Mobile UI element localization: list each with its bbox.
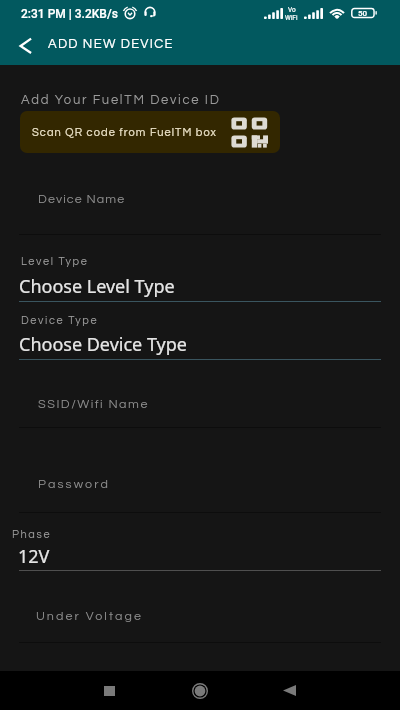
staticText: Vo [288, 6, 296, 14]
button[interactable]: Home [178, 671, 222, 710]
staticText: Device Type [21, 315, 99, 326]
staticText: Add Your FuelTM Device ID [21, 93, 221, 106]
button[interactable]: Recent apps [87, 671, 131, 710]
button[interactable]: Back [267, 671, 311, 710]
staticText: Scan QR code from FuelTM box [32, 127, 217, 138]
staticText: Choose Level Type [19, 274, 175, 299]
staticText: Under Voltage [36, 610, 144, 623]
button[interactable]: Back [3, 26, 47, 65]
staticText: SSID/Wifi Name [38, 398, 149, 411]
staticText: Password [38, 478, 110, 491]
staticText: 12V [18, 544, 50, 569]
staticText: ADD NEW DEVICE [48, 37, 174, 50]
staticText: Level Type [21, 256, 89, 267]
staticText: Phase [12, 529, 52, 540]
staticText: WiFi [285, 14, 298, 22]
staticText: 50 [358, 9, 368, 18]
button[interactable]: Scan QR code from FuelTM box [20, 111, 280, 153]
staticText: Choose Device Type [19, 332, 187, 357]
staticText: Device Name [38, 193, 126, 206]
staticText: 2:31 PM | 3.2KB/s [21, 7, 118, 21]
